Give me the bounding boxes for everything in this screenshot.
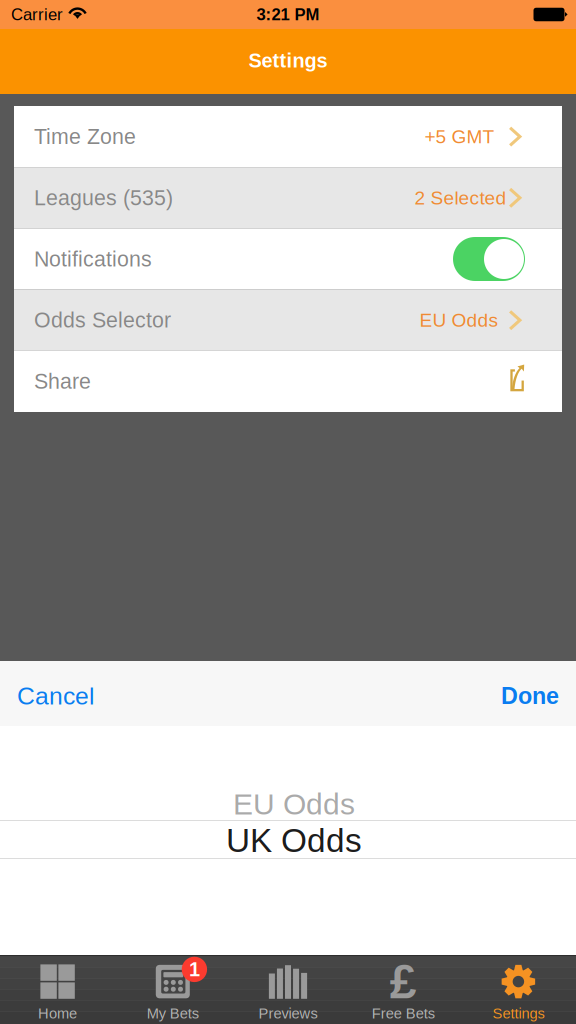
staticText: EU Odds	[233, 787, 355, 821]
button[interactable]: Notifications	[14, 228, 562, 290]
button[interactable]: Home	[0, 955, 115, 1024]
button[interactable]: Leagues (535)	[14, 167, 562, 228]
staticText: EU Odds	[419, 309, 498, 331]
staticText: Free Bets	[372, 1005, 435, 1021]
staticText: Notifications	[34, 247, 152, 271]
staticText: My Bets	[147, 1005, 199, 1021]
staticText: +5 GMT	[424, 126, 494, 147]
staticText: Odds Selector	[34, 308, 171, 332]
button[interactable]: Share	[14, 351, 562, 412]
staticText: Share	[34, 369, 91, 393]
staticText: 2 Selected	[414, 187, 506, 208]
staticText: Settings	[248, 49, 327, 72]
button[interactable]: Done	[484, 661, 576, 726]
staticText: £	[390, 955, 417, 1008]
staticText: UK Odds	[226, 822, 362, 859]
staticText: Leagues (535)	[34, 186, 173, 210]
staticText: Cancel	[17, 682, 94, 710]
button[interactable]: Previews	[230, 955, 346, 1024]
staticText: Done	[501, 683, 559, 709]
staticText: Time Zone	[34, 125, 136, 148]
staticText: Settings	[492, 1005, 544, 1021]
staticText: 3:21 PM	[256, 5, 319, 24]
button[interactable]: Settings	[461, 955, 576, 1024]
staticText: 1	[189, 958, 200, 980]
staticText: Previews	[258, 1005, 317, 1021]
button[interactable]: £	[346, 955, 461, 1024]
button[interactable]: 1	[115, 955, 230, 1024]
button[interactable]: Cancel	[0, 661, 111, 726]
button[interactable]: Odds Selector	[14, 290, 562, 351]
button[interactable]: Time Zone	[14, 106, 562, 167]
staticText: Home	[38, 1005, 77, 1021]
staticText: Carrier	[11, 5, 63, 24]
